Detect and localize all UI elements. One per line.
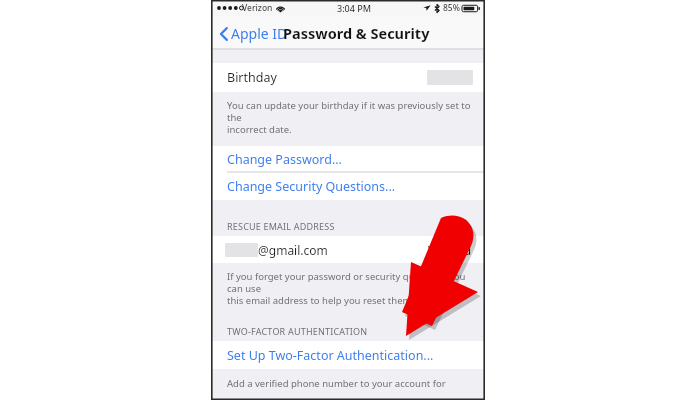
staticText: Verified — [428, 242, 472, 258]
staticText: Birthday — [227, 69, 277, 86]
staticText: Verizon — [242, 2, 273, 14]
staticText: RESCUE EMAIL ADDRESS — [227, 220, 335, 232]
staticText: 85% — [443, 2, 460, 14]
staticText: TWO-FACTOR AUTHENTICATION — [227, 325, 368, 337]
staticText: @gmail.com — [258, 242, 328, 258]
staticText: Change Security Questions... — [227, 178, 396, 195]
staticText: Password & Security — [283, 23, 430, 43]
staticText: Add a verified phone number to your acco… — [227, 377, 475, 392]
staticText: Apple ID — [231, 24, 288, 43]
staticText: If you forget your password or security … — [227, 270, 475, 307]
button[interactable]: Change Security Questions... — [211, 173, 485, 200]
staticText: 3:04 PM — [337, 2, 371, 14]
other: Pointer arrow highlighting Set Up Two-Fa… — [0, 0, 700, 400]
button[interactable]: Change Password... — [211, 146, 485, 173]
button[interactable]: Set Up Two-Factor Authentication... — [211, 341, 485, 369]
button[interactable]: Birthday — [211, 63, 485, 92]
staticText: Set Up Two-Factor Authentication... — [227, 347, 434, 364]
button[interactable]: Apple ID — [218, 20, 290, 47]
button[interactable]: @gmail.com — [211, 236, 485, 263]
staticText: You can update your birthday if it was p… — [227, 99, 475, 136]
staticText: Change Password... — [227, 151, 342, 168]
